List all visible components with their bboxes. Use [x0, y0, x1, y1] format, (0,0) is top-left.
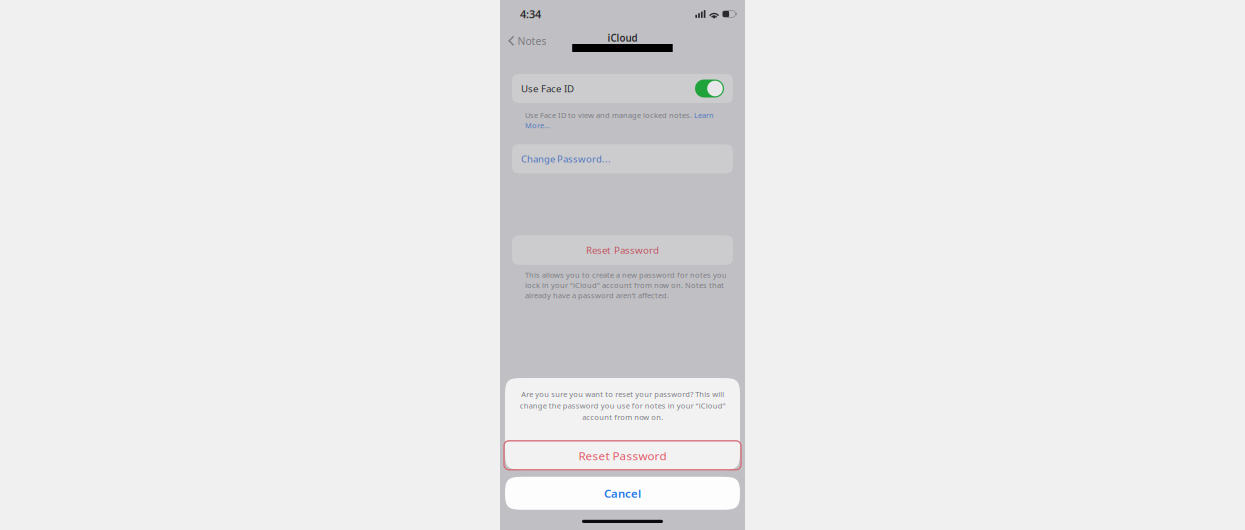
button[interactable]: Reset Password [505, 442, 740, 470]
button[interactable]: Use Face ID [512, 74, 733, 103]
staticText: iCloud [607, 31, 637, 45]
staticText: Are you sure you want to reset your pass… [519, 389, 725, 422]
staticText: Change Password... [521, 152, 611, 165]
button[interactable]: Change Password... [512, 144, 733, 173]
button[interactable]: Cancel [505, 477, 740, 510]
staticText: Cancel [604, 486, 641, 501]
button[interactable]: Reset Password [512, 235, 733, 265]
staticText: Reset Password [586, 243, 659, 257]
staticText: This allows you to create a new password… [525, 270, 727, 300]
staticText: Use Face ID to view and manage locked no… [525, 110, 714, 130]
staticText: 4:34 [520, 7, 541, 21]
staticText: Use Face ID [521, 82, 574, 95]
staticText: Notes [517, 34, 546, 48]
button[interactable]: Notes [500, 31, 552, 51]
staticText: Reset Password [578, 448, 666, 464]
